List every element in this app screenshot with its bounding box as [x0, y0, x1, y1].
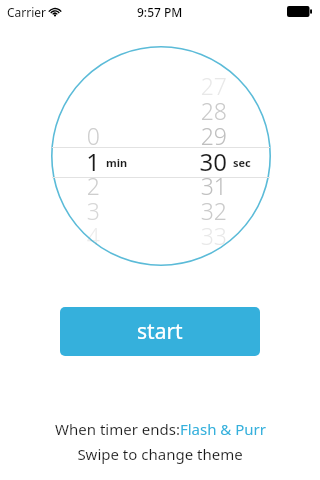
staticText: sec [233, 155, 251, 169]
staticText: 4 [86, 220, 100, 251]
staticText: 31 [200, 170, 227, 201]
staticText: min [106, 155, 128, 169]
staticText: 3 [86, 195, 100, 226]
staticText: 2 [86, 170, 100, 201]
staticText: Swipe to change theme [77, 444, 243, 464]
staticText: 0 [86, 120, 100, 151]
staticText: start [137, 317, 183, 346]
button[interactable]: When timer ends:Flash & Purr [30, 419, 290, 439]
staticText: 27 [200, 70, 227, 101]
staticText: 29 [200, 120, 227, 151]
staticText: 28 [200, 95, 227, 126]
staticText: Carrier [7, 4, 47, 20]
staticText: 32 [200, 195, 227, 226]
staticText: 30 [199, 145, 227, 178]
staticText: 33 [200, 220, 227, 251]
button[interactable]: start [60, 307, 260, 356]
staticText: 1 [86, 145, 100, 178]
staticText: 9:57 PM [137, 4, 183, 20]
staticText: When timer ends:Flash & Purr [55, 419, 266, 439]
